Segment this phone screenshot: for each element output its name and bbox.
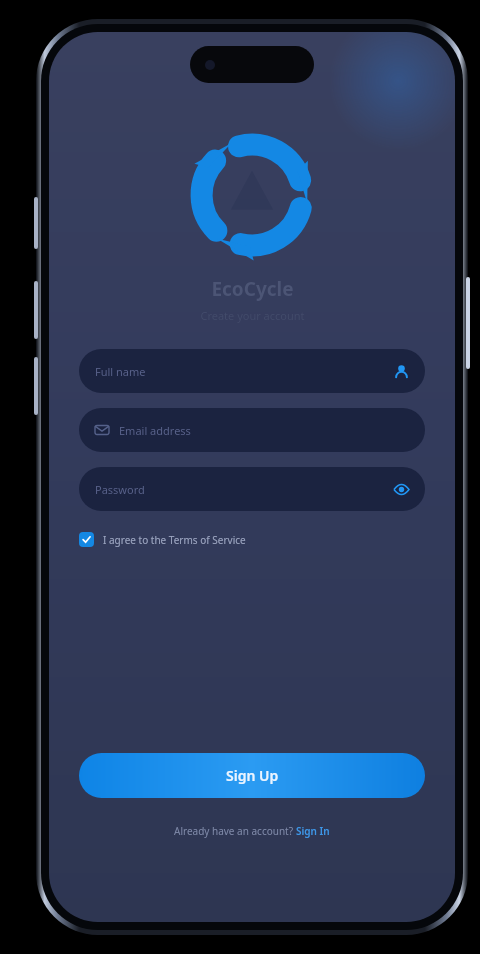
button[interactable]: Sign Up [79,753,425,798]
button[interactable]: Password [79,467,425,511]
button[interactable]: Full name [79,349,425,393]
staticText: Password [95,482,145,497]
other: Volume down [34,357,38,415]
other: Action button [34,197,38,249]
staticText: Sign In [296,824,330,838]
staticText: EcoCycle [211,276,294,302]
staticText: Already have an account? [174,824,296,838]
other: Power [466,277,470,369]
button[interactable]: I agree to the Terms of Service [79,528,425,551]
staticText: Sign Up [226,766,279,785]
staticText: I agree to the Terms of Service [103,533,246,547]
other: Volume up [34,281,38,339]
staticText: Email address [119,423,191,438]
staticText: Create your account [200,308,305,323]
button[interactable]: Already have an account? [170,820,334,842]
button[interactable]: Email address [79,408,425,452]
staticText: Full name [95,364,146,379]
